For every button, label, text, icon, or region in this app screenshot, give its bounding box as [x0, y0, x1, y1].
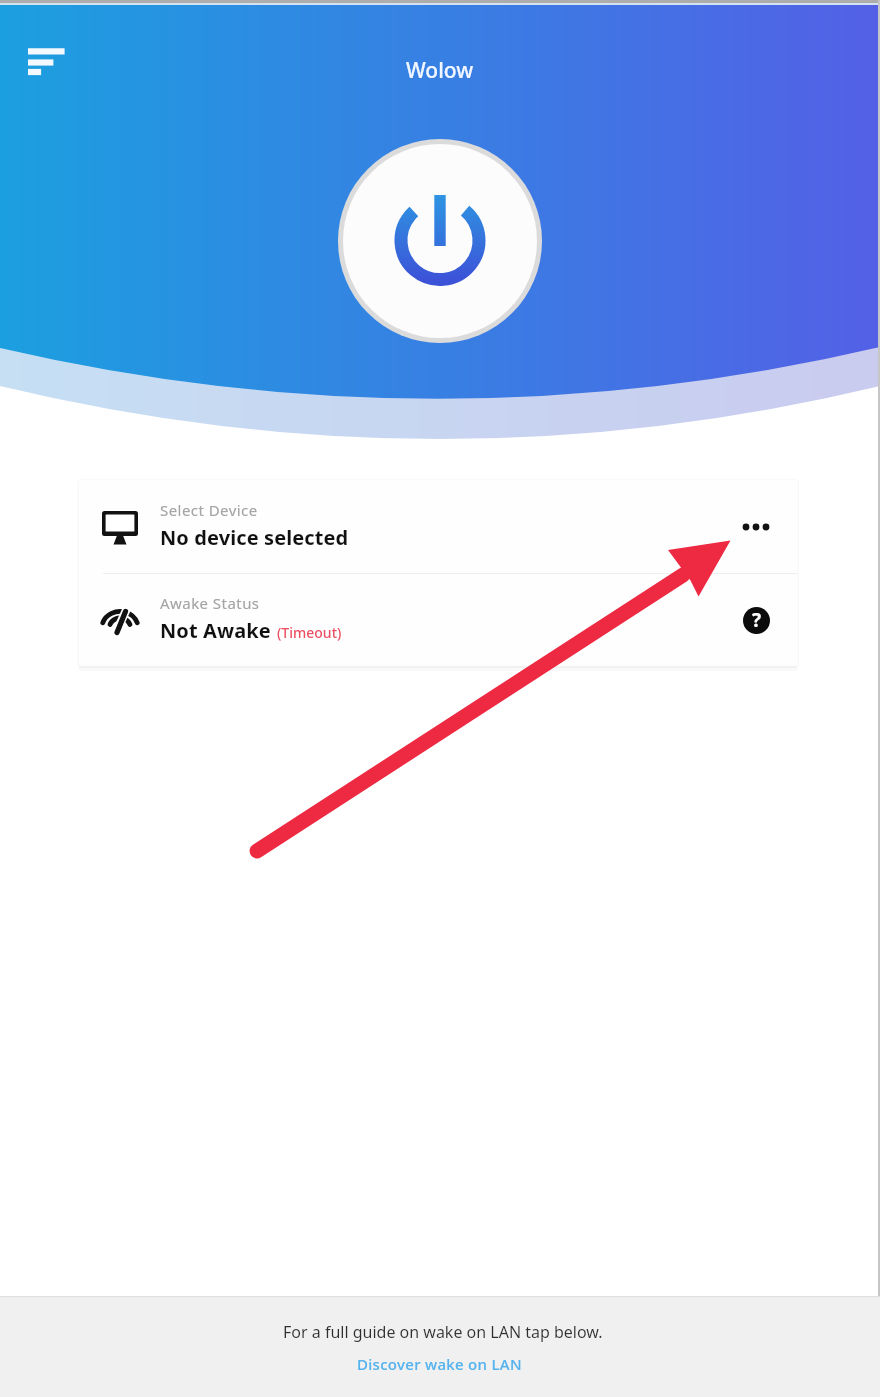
staticText: ? — [752, 607, 762, 633]
staticText: For a full guide on wake on LAN tap belo… — [283, 1321, 603, 1343]
button[interactable]: More options — [724, 494, 788, 558]
button[interactable]: Menu — [8, 31, 68, 91]
button[interactable]: Awake Status — [79, 572, 797, 664]
button[interactable]: Discover wake on LAN — [357, 1354, 522, 1374]
button[interactable]: Select Device — [79, 480, 797, 572]
staticText: (Timeout) — [277, 623, 342, 642]
staticText: Select Device — [160, 500, 258, 520]
button[interactable]: Power — [343, 144, 537, 338]
staticText: Discover wake on LAN — [357, 1354, 522, 1374]
staticText: Wolow — [406, 56, 474, 85]
staticText: Awake Status — [160, 593, 260, 613]
staticText: Not Awake — [160, 617, 271, 644]
staticText: No device selected — [160, 524, 349, 551]
button[interactable]: Help — [724, 586, 788, 650]
